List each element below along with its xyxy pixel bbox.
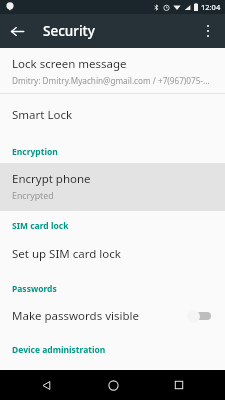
button[interactable]: Recent apps xyxy=(159,370,199,400)
staticText: SIM card lock xyxy=(12,220,69,232)
button[interactable]: Set up SIM card lock xyxy=(0,237,225,274)
staticText: Encrypt phone xyxy=(12,171,91,187)
button[interactable]: Back xyxy=(26,370,66,400)
staticText: Passwords xyxy=(12,283,57,295)
staticText: Encrypted xyxy=(12,190,54,202)
button[interactable]: Make passwords visible xyxy=(0,300,225,335)
staticText: Set up SIM card lock xyxy=(12,246,121,262)
staticText: 12:04 xyxy=(201,2,221,12)
staticText: Encryption xyxy=(12,146,58,158)
staticText: Make passwords visible xyxy=(12,308,187,324)
staticText: Device administration xyxy=(12,344,106,356)
button[interactable]: Encrypt phone xyxy=(0,163,225,211)
button[interactable]: Lock screen message xyxy=(0,48,225,93)
staticText: Security xyxy=(43,22,191,40)
button[interactable]: Back xyxy=(0,14,34,48)
button[interactable]: Home xyxy=(93,370,133,400)
staticText: Smart Lock xyxy=(12,107,73,123)
button[interactable]: More options xyxy=(191,14,225,48)
button[interactable]: Smart Lock xyxy=(0,94,225,137)
staticText: Lock screen message xyxy=(12,56,127,72)
staticText: Dmitry: Dmitry.Myachin@gmail.com / +7(96… xyxy=(12,75,210,86)
